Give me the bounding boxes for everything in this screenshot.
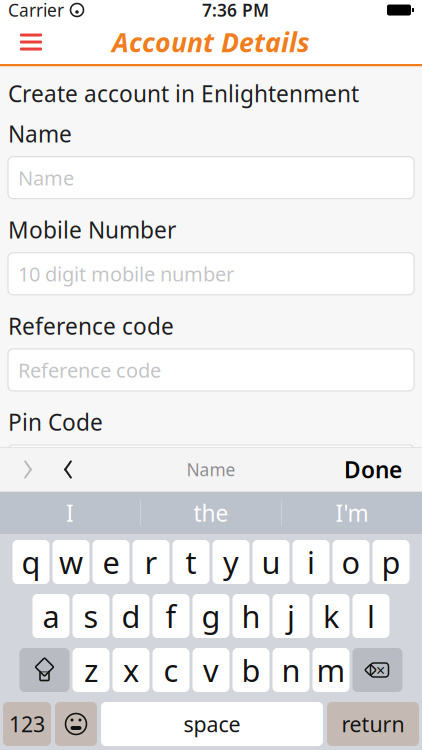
button[interactable]: s <box>72 594 109 638</box>
button[interactable]: c <box>152 648 189 692</box>
button[interactable]: Done <box>332 450 414 488</box>
button[interactable]: p <box>372 540 409 584</box>
staticText: Name <box>8 119 72 149</box>
staticText: y <box>223 542 239 582</box>
button[interactable]: 123 <box>3 702 51 746</box>
button[interactable]: Name <box>8 157 414 199</box>
button[interactable]: o <box>332 540 369 584</box>
staticText: l <box>367 596 375 636</box>
staticText: i <box>307 542 315 582</box>
staticText: x <box>123 650 139 690</box>
button[interactable]: v <box>192 648 229 692</box>
button[interactable]: n <box>272 648 309 692</box>
button[interactable]: Emoji <box>55 702 97 746</box>
button[interactable]: u <box>252 540 289 584</box>
staticText: Pin Code <box>8 407 103 437</box>
staticText: 123 <box>9 710 45 738</box>
button[interactable]: a <box>32 594 69 638</box>
button[interactable]: x <box>112 648 149 692</box>
button[interactable]: k <box>312 594 349 638</box>
button[interactable]: space <box>101 702 323 746</box>
staticText: s <box>83 596 98 636</box>
staticText: t <box>185 542 196 582</box>
button[interactable]: Previous field <box>8 450 48 488</box>
staticText: j <box>287 596 295 636</box>
staticText: e <box>102 542 119 582</box>
staticText: × <box>376 659 385 681</box>
button[interactable]: I <box>0 492 140 534</box>
staticText: d <box>121 596 140 636</box>
button[interactable]: e <box>92 540 129 584</box>
button[interactable]: Delete <box>352 648 402 692</box>
staticText: Reference code <box>8 311 174 341</box>
button[interactable]: I'm <box>282 492 422 534</box>
staticText <box>64 0 68 20</box>
staticText: u <box>261 542 280 582</box>
staticText: Carrier <box>8 0 64 21</box>
button[interactable]: Menu <box>8 20 54 64</box>
staticText: k <box>323 596 339 636</box>
staticText: Name <box>18 164 74 191</box>
staticText: a <box>42 596 59 636</box>
staticText: w <box>59 542 83 582</box>
staticText: r <box>144 542 157 582</box>
button[interactable]: f <box>152 594 189 638</box>
staticText: Reference code <box>18 357 161 383</box>
staticText: 10 digit mobile number <box>18 260 234 287</box>
button[interactable]: t <box>172 540 209 584</box>
button[interactable]: h <box>232 594 269 638</box>
staticText: b <box>241 650 260 690</box>
staticText: Create account in Enlightenment <box>8 78 359 109</box>
staticText: v <box>203 650 219 690</box>
button[interactable]: Pin Code <box>8 445 414 487</box>
button[interactable]: z <box>72 648 109 692</box>
staticText: g <box>201 596 220 636</box>
staticText: m <box>316 650 345 690</box>
staticText: Mobile Number <box>8 215 176 245</box>
button[interactable]: q <box>12 540 49 584</box>
button[interactable]: w <box>52 540 89 584</box>
button[interactable]: r <box>132 540 169 584</box>
staticText: I'm <box>335 498 368 528</box>
button[interactable]: l <box>352 594 389 638</box>
button[interactable]: j <box>272 594 309 638</box>
staticText: h <box>241 596 260 636</box>
staticText: p <box>381 542 400 582</box>
button[interactable]: g <box>192 594 229 638</box>
staticText: c <box>163 650 178 690</box>
staticText: f <box>165 596 176 636</box>
button[interactable]: 10 digit mobile number <box>8 253 414 295</box>
button[interactable]: y <box>212 540 249 584</box>
staticText: o <box>341 542 360 582</box>
staticText: the <box>193 498 228 528</box>
button[interactable]: Next field <box>48 450 88 488</box>
staticText: 7:36 PM <box>202 0 269 21</box>
button[interactable]: Shift <box>19 648 69 692</box>
staticText: n <box>281 650 300 690</box>
staticText: z <box>84 650 98 690</box>
staticText: Done <box>344 454 402 484</box>
button[interactable]: m <box>312 648 349 692</box>
staticText: Name <box>186 458 235 481</box>
button[interactable]: i <box>292 540 329 584</box>
button[interactable]: Reference code <box>8 349 414 391</box>
button[interactable]: d <box>112 594 149 638</box>
staticText: Account Details <box>112 24 310 60</box>
button[interactable]: return <box>327 702 419 746</box>
staticText: Pin Code <box>18 453 100 479</box>
button[interactable]: the <box>141 492 281 534</box>
staticText: I <box>66 498 74 528</box>
staticText: return <box>341 710 404 738</box>
button[interactable]: b <box>232 648 269 692</box>
staticText: space <box>183 710 240 738</box>
staticText: q <box>21 542 40 582</box>
